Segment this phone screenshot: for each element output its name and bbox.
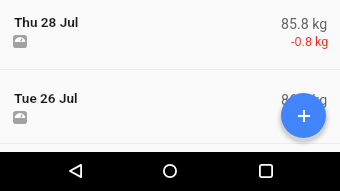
staticText: 86.6 kg xyxy=(281,92,328,109)
staticText: -0.8 kg xyxy=(291,34,329,49)
staticText: Tue 26 Jul xyxy=(14,90,78,106)
button[interactable]: Tue 26 Jul xyxy=(0,70,340,143)
button[interactable]: Home xyxy=(154,155,186,187)
button[interactable]: Thu 28 Jul xyxy=(0,0,340,69)
button[interactable]: Back xyxy=(59,155,91,187)
button[interactable]: Add weight entry xyxy=(281,93,326,138)
staticText: 85.8 kg xyxy=(281,16,328,33)
button[interactable]: Recents xyxy=(250,155,282,187)
staticText: Thu 28 Jul xyxy=(14,14,79,30)
